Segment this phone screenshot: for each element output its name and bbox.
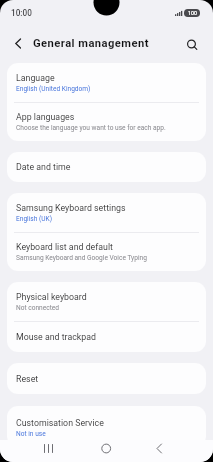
- button[interactable]: [71, 440, 142, 462]
- button[interactable]: [142, 440, 213, 462]
- button[interactable]: [0, 25, 33, 62]
- button[interactable]: [176, 25, 213, 62]
- staticText: English (UK): [16, 215, 52, 223]
- staticText: Not connected: [16, 304, 60, 312]
- staticText: Physical keyboard: [16, 292, 87, 302]
- staticText: 10:00: [11, 8, 32, 18]
- staticText: Mouse and trackpad: [16, 332, 96, 342]
- staticText: General management: [33, 37, 149, 50]
- staticText: Choose the language you want to use for …: [16, 124, 166, 132]
- button[interactable]: Physical keyboard: [7, 282, 206, 321]
- staticText: Samsung Keyboard settings: [16, 203, 126, 213]
- staticText: Not in use: [16, 430, 46, 438]
- button[interactable]: App languages: [7, 103, 206, 141]
- staticText: Date and time: [16, 162, 71, 172]
- button[interactable]: Date and time: [7, 152, 206, 182]
- staticText: App languages: [16, 112, 75, 122]
- staticText: Customisation Service: [16, 418, 104, 428]
- button[interactable]: [0, 440, 71, 462]
- staticText: 100: [188, 10, 197, 16]
- button[interactable]: Customisation Service: [7, 408, 206, 447]
- button[interactable]: Reset: [7, 363, 206, 394]
- staticText: Language: [16, 73, 55, 83]
- button[interactable]: Mouse and trackpad: [7, 322, 206, 352]
- button[interactable]: Samsung Keyboard settings: [7, 193, 206, 232]
- staticText: Samsung Keyboard and Google Voice Typing: [16, 254, 147, 262]
- staticText: Reset: [16, 374, 39, 384]
- staticText: Keyboard list and default: [16, 242, 113, 252]
- staticText: English (United Kingdom): [16, 85, 91, 93]
- button[interactable]: Language: [7, 63, 206, 102]
- button[interactable]: Keyboard list and default: [7, 233, 206, 271]
